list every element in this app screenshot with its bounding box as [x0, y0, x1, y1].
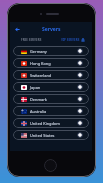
- button[interactable]: United States: [13, 130, 89, 140]
- button[interactable]: Japan: [13, 82, 89, 92]
- button[interactable]: Australia: [13, 106, 89, 116]
- button[interactable]: Switzerland: [13, 70, 89, 80]
- staticText: Australia: [30, 109, 47, 114]
- staticText: United Kingdom: [30, 121, 60, 126]
- staticText: United States: [30, 133, 55, 138]
- staticText: Hong Kong: [30, 61, 51, 66]
- staticText: Germany: [30, 49, 47, 54]
- staticText: Denmark: [30, 97, 47, 102]
- button[interactable]: Denmark: [13, 94, 89, 104]
- staticText: VIP SERVERS: [61, 38, 80, 42]
- staticText: Servers: [42, 26, 61, 33]
- button[interactable]: Back: [14, 26, 21, 33]
- button[interactable]: Germany: [13, 46, 89, 56]
- button[interactable]: VIP SERVERS: [61, 38, 85, 42]
- staticText: Japan: [30, 85, 41, 90]
- button[interactable]: United Kingdom: [13, 118, 89, 128]
- staticText: Switzerland: [30, 73, 52, 78]
- button[interactable]: Hong Kong: [13, 58, 89, 68]
- button[interactable]: FREE SERVERS: [21, 38, 42, 42]
